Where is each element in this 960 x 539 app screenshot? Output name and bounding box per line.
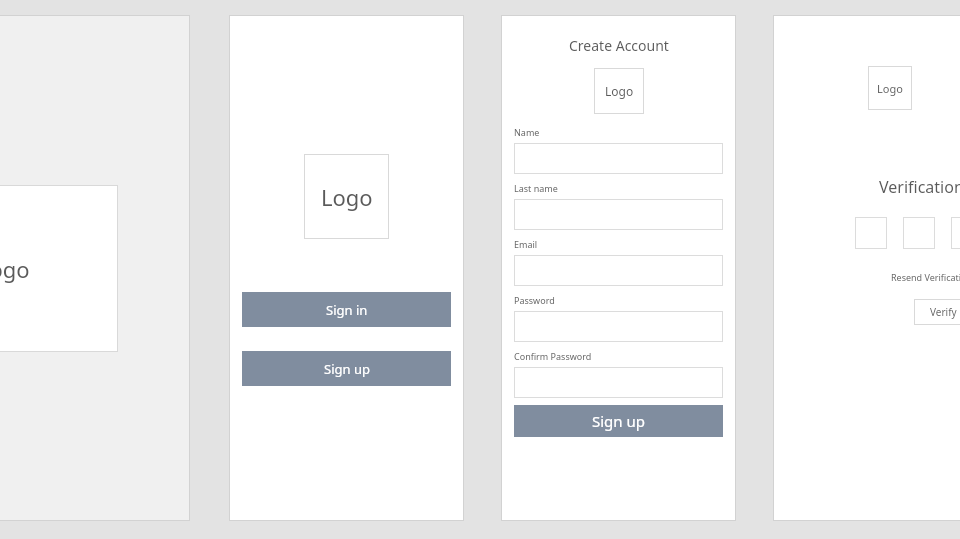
staticText: Sign up (592, 411, 645, 431)
button[interactable]: Sign up (514, 405, 723, 437)
staticText: Logo (0, 254, 30, 284)
staticText: Name (514, 126, 540, 138)
button[interactable]: Digit 1 (855, 217, 887, 249)
button[interactable]: Digit 3 (951, 217, 960, 249)
staticText: Email (514, 238, 538, 250)
button[interactable]: Verify (914, 299, 960, 325)
staticText: Logo (321, 182, 373, 212)
button[interactable]: Sign up (242, 351, 451, 386)
staticText: Create Account (569, 36, 669, 55)
button[interactable]: Digit 2 (903, 217, 935, 249)
button[interactable] (514, 143, 723, 174)
staticText: Sign in (326, 301, 368, 319)
button[interactable] (514, 255, 723, 286)
staticText: Resend Verification code (891, 271, 960, 283)
staticText: Confirm Password (514, 350, 592, 362)
button[interactable] (514, 367, 723, 398)
staticText: Sign up (324, 360, 370, 378)
staticText: Verify (930, 305, 957, 319)
button[interactable]: Sign in (242, 292, 451, 327)
staticText: Logo (877, 81, 903, 96)
button[interactable] (514, 199, 723, 230)
staticText: Last name (514, 182, 558, 194)
button[interactable]: Resend Verification code (839, 271, 943, 283)
button[interactable] (514, 311, 723, 342)
staticText: Password (514, 294, 555, 306)
staticText: Verification Code (879, 176, 960, 198)
staticText: Logo (605, 83, 634, 99)
